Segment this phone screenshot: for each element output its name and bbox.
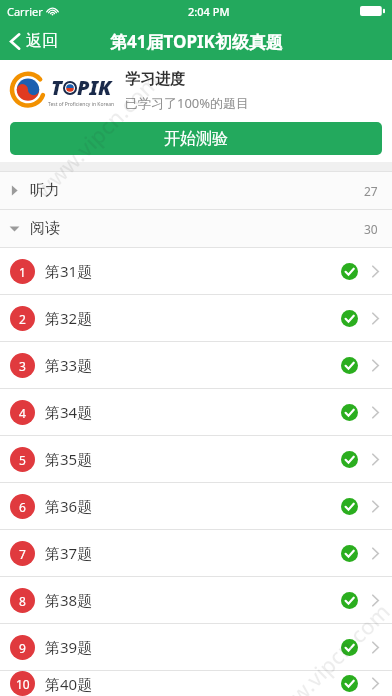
staticText: 听力 — [30, 181, 60, 200]
staticText: 第31题 — [45, 261, 93, 281]
staticText: 3 — [19, 358, 26, 374]
button[interactable]: 3 — [0, 342, 392, 388]
staticText: 27 — [364, 183, 378, 199]
other: 已完成 — [341, 675, 358, 692]
button[interactable]: 8 — [0, 577, 392, 623]
staticText: 开始测验 — [164, 129, 228, 149]
other: 已完成 — [341, 263, 358, 280]
staticText: 10 — [16, 676, 30, 692]
staticText: 8 — [19, 593, 26, 609]
staticText: 2:04 PM — [188, 4, 230, 19]
other: 已完成 — [341, 310, 358, 327]
staticText: 已学习了100%的题目 — [125, 94, 250, 112]
other: 已完成 — [341, 639, 358, 656]
other: 已完成 — [341, 451, 358, 468]
staticText: www.vipcn.com — [258, 596, 392, 696]
button[interactable]: 阅读 — [0, 210, 392, 247]
other: 已完成 — [341, 357, 358, 374]
staticText: 第37题 — [45, 543, 93, 563]
other: 已完成 — [341, 592, 358, 609]
staticText: 第34题 — [45, 402, 93, 422]
staticText: 5 — [19, 452, 26, 468]
button[interactable]: 9 — [0, 624, 392, 670]
staticText: 阅读 — [30, 219, 60, 238]
staticText: 第38题 — [45, 590, 93, 610]
staticText: 6 — [19, 499, 26, 515]
staticText: 4 — [19, 405, 26, 421]
button[interactable]: 4 — [0, 389, 392, 435]
staticText: T — [51, 74, 63, 101]
staticText: PIK — [77, 74, 112, 101]
staticText: 30 — [364, 221, 378, 237]
staticText: 7 — [19, 546, 26, 562]
other: 已完成 — [341, 404, 358, 421]
button[interactable]: 6 — [0, 483, 392, 529]
staticText: Carrier — [7, 4, 43, 19]
other: 已完成 — [341, 545, 358, 562]
button[interactable]: 5 — [0, 436, 392, 482]
staticText: 第32题 — [45, 308, 93, 328]
button[interactable]: 7 — [0, 530, 392, 576]
button[interactable]: 听力 — [0, 172, 392, 209]
button[interactable]: 返回 — [5, 26, 62, 56]
staticText: 返回 — [26, 31, 58, 51]
staticText: 第36题 — [45, 496, 93, 516]
button[interactable]: 2 — [0, 295, 392, 341]
other: 已完成 — [341, 498, 358, 515]
button[interactable]: 1 — [0, 248, 392, 294]
button[interactable]: 10 — [0, 671, 392, 696]
staticText: Test of Proficiency in Korean — [48, 101, 115, 108]
button[interactable]: 开始测验 — [10, 122, 382, 155]
staticText: 2 — [19, 311, 26, 327]
staticText: 1 — [19, 264, 26, 280]
staticText: 9 — [19, 640, 26, 656]
staticText: www.vipcn.com — [28, 66, 166, 204]
staticText: 学习进度 — [125, 70, 185, 89]
staticText: 第33题 — [45, 355, 93, 375]
staticText: 第41届TOPIK初级真题 — [110, 30, 283, 53]
staticText: 第40题 — [45, 674, 93, 694]
staticText: 第39题 — [45, 637, 93, 657]
staticText: 第35题 — [45, 449, 93, 469]
